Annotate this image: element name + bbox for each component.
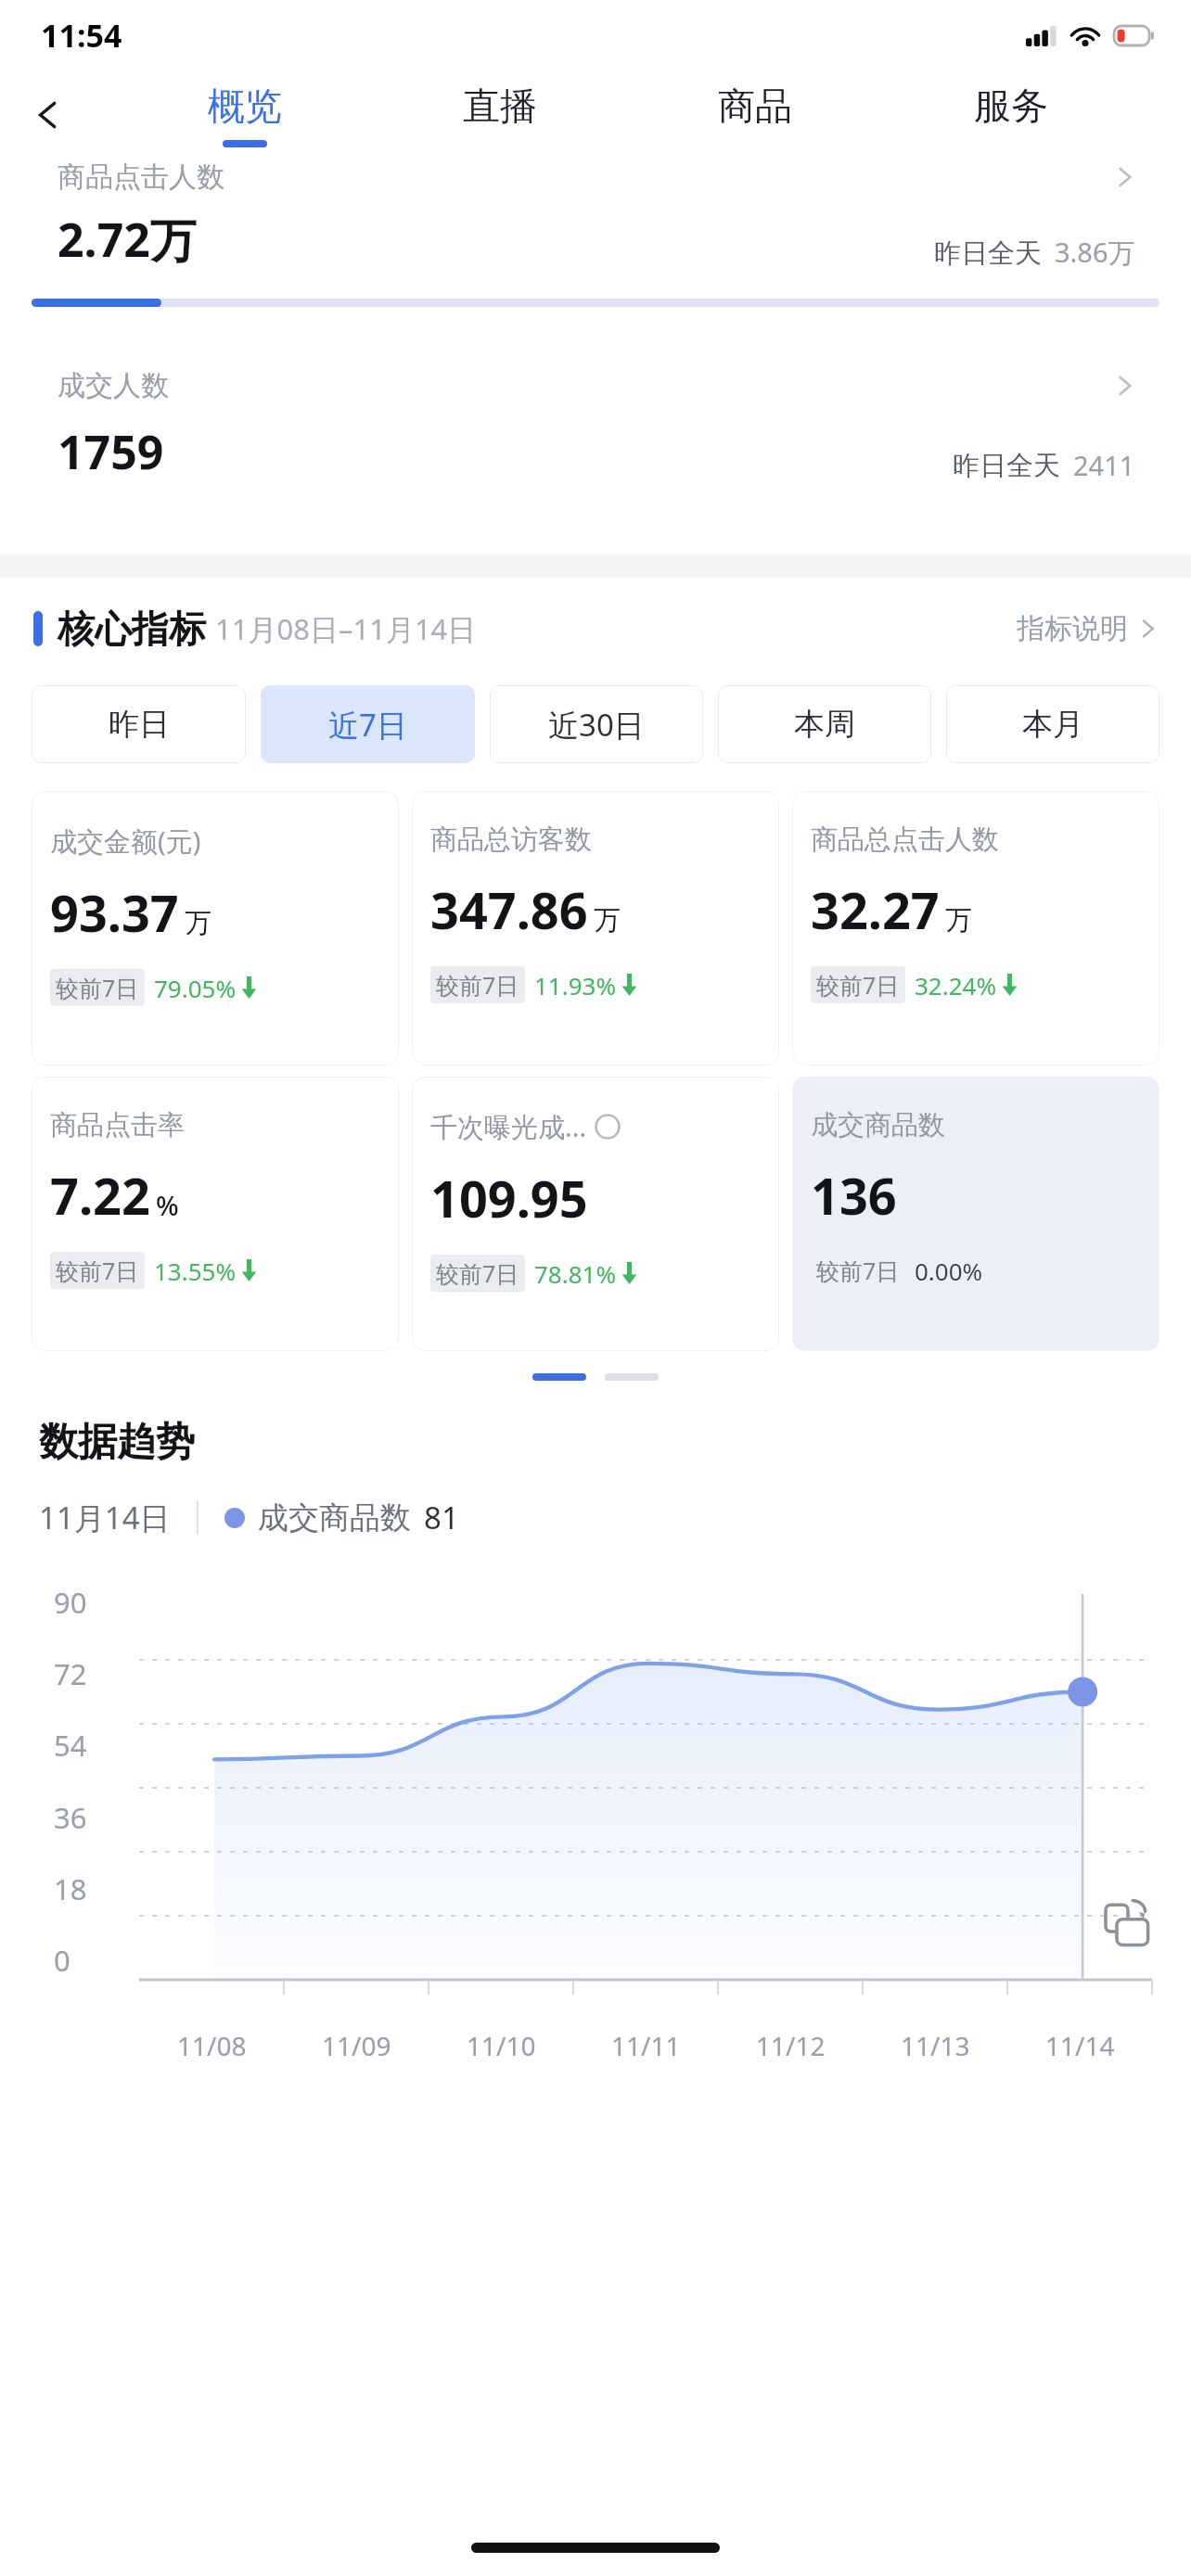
button[interactable]: 千次曝光成... — [412, 1077, 779, 1351]
staticText: 11/12 — [756, 2028, 826, 2063]
staticText: 万 — [945, 903, 972, 937]
staticText: 13.55% — [154, 1255, 237, 1287]
staticText: 11:54 — [41, 14, 122, 57]
staticText: 商品总点击人数 — [811, 823, 999, 857]
staticText: 11.93% — [534, 969, 617, 1001]
staticText: 11/09 — [322, 2028, 391, 2063]
staticText: 商品总访客数 — [430, 823, 592, 857]
staticText: 概览 — [208, 83, 282, 129]
staticText: 32.27 — [811, 875, 940, 944]
staticText: 较前7日 — [436, 1257, 519, 1289]
staticText: 成交商品数 — [258, 1498, 411, 1537]
staticText: 11/13 — [901, 2028, 970, 2063]
staticText: 136 — [811, 1161, 897, 1230]
button[interactable]: 成交金额(元) — [32, 791, 399, 1065]
staticText: 近30日 — [548, 704, 645, 746]
button[interactable]: 概览 — [117, 70, 372, 159]
staticText: 万 — [594, 903, 621, 937]
staticText: 72 — [54, 1654, 87, 1693]
staticText: 11/08 — [177, 2028, 247, 2063]
button[interactable]: 商品总点击人数 — [792, 791, 1159, 1065]
staticText: 较前7日 — [56, 1255, 139, 1286]
button[interactable]: 近7日 — [261, 685, 475, 763]
staticText: % — [156, 1187, 179, 1223]
staticText: 0 — [54, 1941, 70, 1980]
staticText: 昨日全天 — [934, 236, 1042, 271]
staticText: 成交金额(元) — [50, 823, 201, 860]
staticText: 较前7日 — [816, 1255, 900, 1286]
staticText: 1759 — [58, 420, 164, 483]
button[interactable]: Back — [20, 87, 76, 143]
staticText: 2.72万 — [58, 208, 197, 271]
staticText: 93.37 — [50, 878, 179, 947]
staticText: 18 — [54, 1869, 87, 1908]
button[interactable]: 商品 — [627, 70, 883, 159]
staticText: 本周 — [794, 705, 855, 744]
staticText: 2411 — [1073, 447, 1135, 483]
staticText: 成交商品数 — [811, 1108, 945, 1142]
staticText: 指标说明 — [1017, 611, 1128, 646]
staticText: 347.86 — [430, 875, 588, 944]
staticText: 商品 — [718, 83, 792, 129]
staticText: 3.86万 — [1055, 234, 1135, 271]
button[interactable]: 指标说明 — [1017, 611, 1158, 646]
staticText: 54 — [54, 1726, 87, 1765]
staticText: 较前7日 — [56, 972, 139, 1003]
staticText: 11/14 — [1045, 2028, 1115, 2063]
staticText: 11/11 — [611, 2028, 681, 2063]
button[interactable]: 成交人数 — [32, 329, 1159, 535]
staticText: 36 — [54, 1798, 87, 1837]
staticText: 昨日 — [109, 705, 170, 744]
staticText: 0.00% — [915, 1255, 983, 1287]
staticText: 近7日 — [328, 704, 407, 746]
staticText: 11月14日 — [39, 1497, 171, 1538]
staticText: 11月08日–11月14日 — [215, 609, 477, 648]
staticText: 核心指标 — [58, 606, 206, 652]
staticText: 较前7日 — [816, 969, 900, 1001]
button[interactable]: 成交商品数 — [792, 1077, 1159, 1351]
staticText: 直播 — [463, 83, 537, 129]
staticText: 32.24% — [915, 969, 997, 1001]
staticText: 79.05% — [154, 972, 237, 1004]
button[interactable]: 昨日 — [32, 685, 246, 763]
button[interactable]: Rotate screen — [1100, 1898, 1156, 1954]
staticText: 7.22 — [50, 1161, 150, 1230]
button[interactable]: 直播 — [372, 70, 627, 159]
staticText: 数据趋势 — [39, 1418, 195, 1467]
staticText: 较前7日 — [436, 969, 519, 1001]
button[interactable]: 商品总访客数 — [412, 791, 779, 1065]
staticText: 90 — [54, 1583, 87, 1622]
staticText: 11/10 — [467, 2028, 536, 2063]
button[interactable]: 商品点击率 — [32, 1077, 399, 1351]
staticText: 服务 — [974, 83, 1048, 129]
staticText: 本月 — [1022, 705, 1083, 744]
staticText: 81 — [424, 1497, 459, 1538]
staticText: 商品点击率 — [50, 1108, 185, 1142]
staticText: 商品点击人数 — [58, 159, 224, 195]
staticText: 成交人数 — [58, 368, 169, 403]
staticText: 千次曝光成... — [430, 1108, 587, 1145]
button[interactable]: 本月 — [946, 685, 1159, 763]
button[interactable]: 服务 — [883, 70, 1139, 159]
staticText: 78.81% — [534, 1257, 617, 1290]
button[interactable]: 商品点击人数 — [32, 159, 1159, 299]
button[interactable]: 本周 — [718, 685, 931, 763]
staticText: 万 — [185, 906, 211, 940]
button[interactable]: 近30日 — [490, 685, 703, 763]
staticText: 昨日全天 — [953, 449, 1060, 483]
staticText: 109.95 — [430, 1164, 588, 1232]
